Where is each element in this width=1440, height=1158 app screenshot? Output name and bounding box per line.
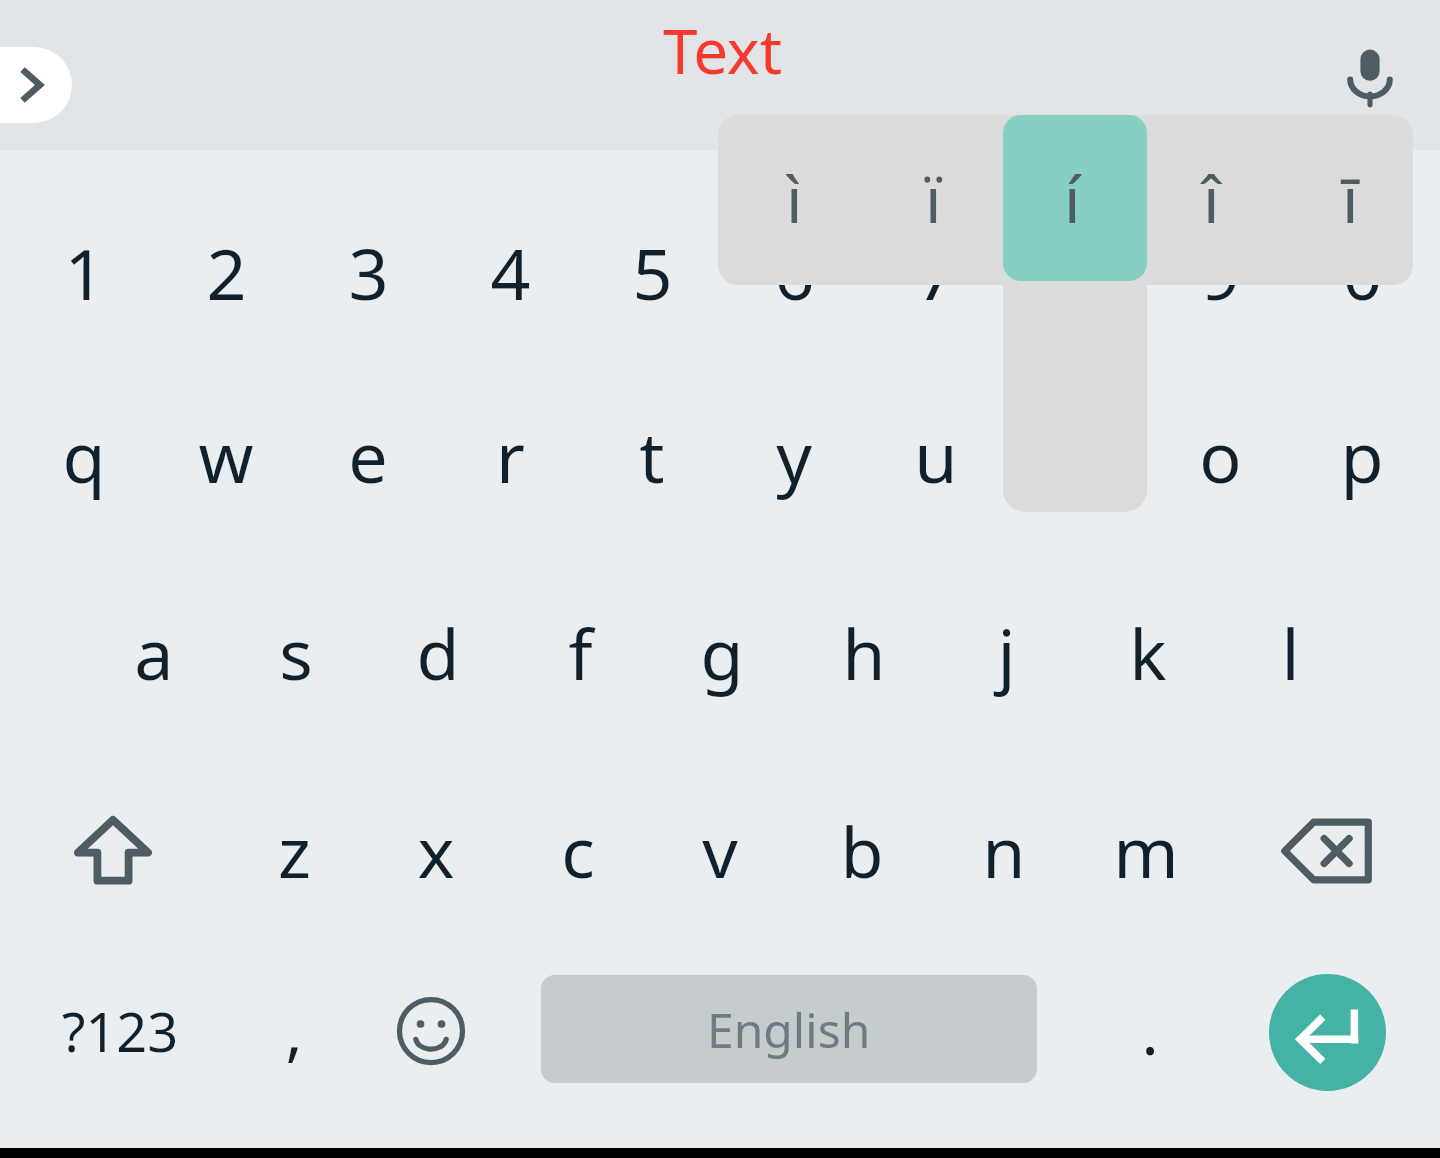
staticText: p <box>1340 408 1384 503</box>
staticText: h <box>842 605 886 700</box>
staticText: c <box>561 803 595 898</box>
staticText: l <box>1281 605 1300 700</box>
staticText: e <box>348 408 388 503</box>
button[interactable]: 9 <box>1165 217 1275 327</box>
staticText: k <box>1129 605 1167 700</box>
button[interactable]: k <box>1093 597 1203 707</box>
staticText: n <box>982 803 1026 898</box>
staticText: . <box>1141 987 1159 1074</box>
staticText: a <box>134 605 174 700</box>
staticText: ì <box>786 155 803 242</box>
staticText: u <box>914 408 958 503</box>
button[interactable]: 6 <box>739 217 849 327</box>
staticText: 9 <box>1200 225 1241 320</box>
staticText: s <box>279 605 313 700</box>
button[interactable]: a <box>99 597 209 707</box>
button[interactable]: c <box>523 795 633 905</box>
button[interactable]: Backspace <box>1266 790 1388 912</box>
button[interactable]: ī <box>1281 115 1420 281</box>
button[interactable]: r <box>455 400 565 510</box>
button[interactable]: . <box>1095 975 1205 1085</box>
staticText: b <box>840 803 884 898</box>
button[interactable]: y <box>739 400 849 510</box>
staticText: o <box>1199 408 1242 503</box>
button[interactable]: ï <box>864 115 1003 281</box>
staticText: 0 <box>1342 225 1383 320</box>
button[interactable]: 5 <box>597 217 707 327</box>
button[interactable]: t <box>597 400 707 510</box>
button[interactable]: 4 <box>455 217 565 327</box>
staticText: 7 <box>916 225 957 320</box>
staticText: t <box>639 408 665 503</box>
staticText: 3 <box>348 225 389 320</box>
button[interactable]: j <box>951 597 1061 707</box>
staticText: , <box>285 987 303 1074</box>
staticText: ī <box>1342 155 1359 242</box>
staticText: í <box>1064 155 1081 242</box>
staticText: 4 <box>490 225 531 320</box>
button[interactable]: e <box>313 400 423 510</box>
button[interactable]: Text <box>603 8 843 86</box>
button[interactable]: English <box>541 975 1037 1083</box>
button[interactable]: l <box>1235 597 1345 707</box>
button[interactable]: x <box>381 795 491 905</box>
button[interactable]: Emoji <box>375 975 487 1087</box>
button[interactable]: o <box>1165 400 1275 510</box>
button[interactable]: 0 <box>1307 217 1417 327</box>
button[interactable]: 3 <box>313 217 423 327</box>
button[interactable]: 7 <box>881 217 991 327</box>
staticText: w <box>198 408 254 503</box>
button[interactable]: Expand suggestions <box>0 47 72 123</box>
button[interactable]: p <box>1307 400 1417 510</box>
button[interactable]: î <box>1142 115 1281 281</box>
button[interactable]: g <box>667 597 777 707</box>
staticText: î <box>1203 155 1220 242</box>
button[interactable]: z <box>239 795 349 905</box>
button[interactable]: 2 <box>171 217 281 327</box>
button[interactable]: f <box>525 597 635 707</box>
button[interactable]: u <box>881 400 991 510</box>
staticText: j <box>997 605 1016 700</box>
button[interactable]: Voice input <box>1322 28 1418 124</box>
button[interactable]: , <box>239 975 349 1085</box>
staticText: d <box>416 605 460 700</box>
staticText: g <box>700 605 744 700</box>
button[interactable]: ?123 <box>30 975 210 1087</box>
staticText: 1 <box>64 225 105 320</box>
button[interactable]: Shift <box>52 790 174 912</box>
button[interactable]: q <box>29 400 139 510</box>
button[interactable]: 8 <box>1023 217 1133 327</box>
button[interactable]: v <box>665 795 775 905</box>
staticText: x <box>417 803 455 898</box>
staticText: English <box>707 997 871 1062</box>
staticText: f <box>568 605 593 700</box>
button[interactable]: m <box>1091 795 1201 905</box>
button[interactable]: b <box>807 795 917 905</box>
staticText: ?123 <box>62 994 179 1068</box>
button[interactable]: Enter <box>1269 974 1386 1091</box>
button[interactable]: d <box>383 597 493 707</box>
staticText: m <box>1113 803 1179 898</box>
staticText: z <box>278 803 311 898</box>
staticText: Text <box>663 8 783 86</box>
staticText: ï <box>925 155 942 242</box>
button[interactable]: ì <box>725 115 864 281</box>
button[interactable]: h <box>809 597 919 707</box>
button[interactable]: s <box>241 597 351 707</box>
staticText: 6 <box>774 225 815 320</box>
staticText: r <box>496 408 525 503</box>
staticText: v <box>702 803 738 898</box>
button[interactable]: w <box>171 400 281 510</box>
staticText: 8 <box>1058 225 1099 320</box>
staticText: 2 <box>206 225 247 320</box>
staticText: 5 <box>632 225 673 320</box>
staticText: y <box>776 408 812 503</box>
button[interactable]: n <box>949 795 1059 905</box>
button[interactable]: í <box>1003 115 1142 281</box>
staticText: q <box>62 408 106 503</box>
button[interactable]: 1 <box>29 217 139 327</box>
